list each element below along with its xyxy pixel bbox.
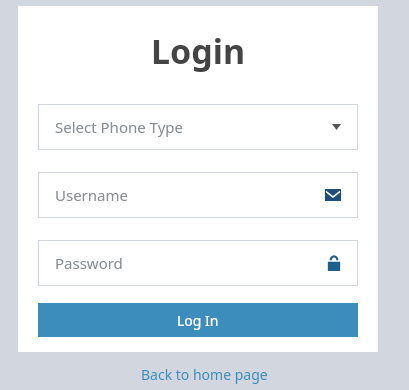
button[interactable]: Username bbox=[38, 172, 358, 218]
other: Email bbox=[325, 189, 341, 201]
other: Open phone type list bbox=[332, 124, 341, 130]
button[interactable]: Select Phone Type bbox=[38, 104, 358, 150]
button[interactable]: Log In bbox=[38, 303, 358, 337]
staticText: Select Phone Type bbox=[55, 117, 183, 137]
staticText: Password bbox=[55, 253, 123, 273]
other: Password bbox=[327, 255, 341, 271]
staticText: Log In bbox=[177, 311, 219, 330]
button[interactable]: Password bbox=[38, 240, 358, 286]
staticText: Username bbox=[55, 185, 128, 205]
staticText: Login bbox=[38, 28, 358, 74]
staticText: Back to home page bbox=[141, 365, 268, 384]
button[interactable]: Back to home page bbox=[135, 363, 274, 386]
